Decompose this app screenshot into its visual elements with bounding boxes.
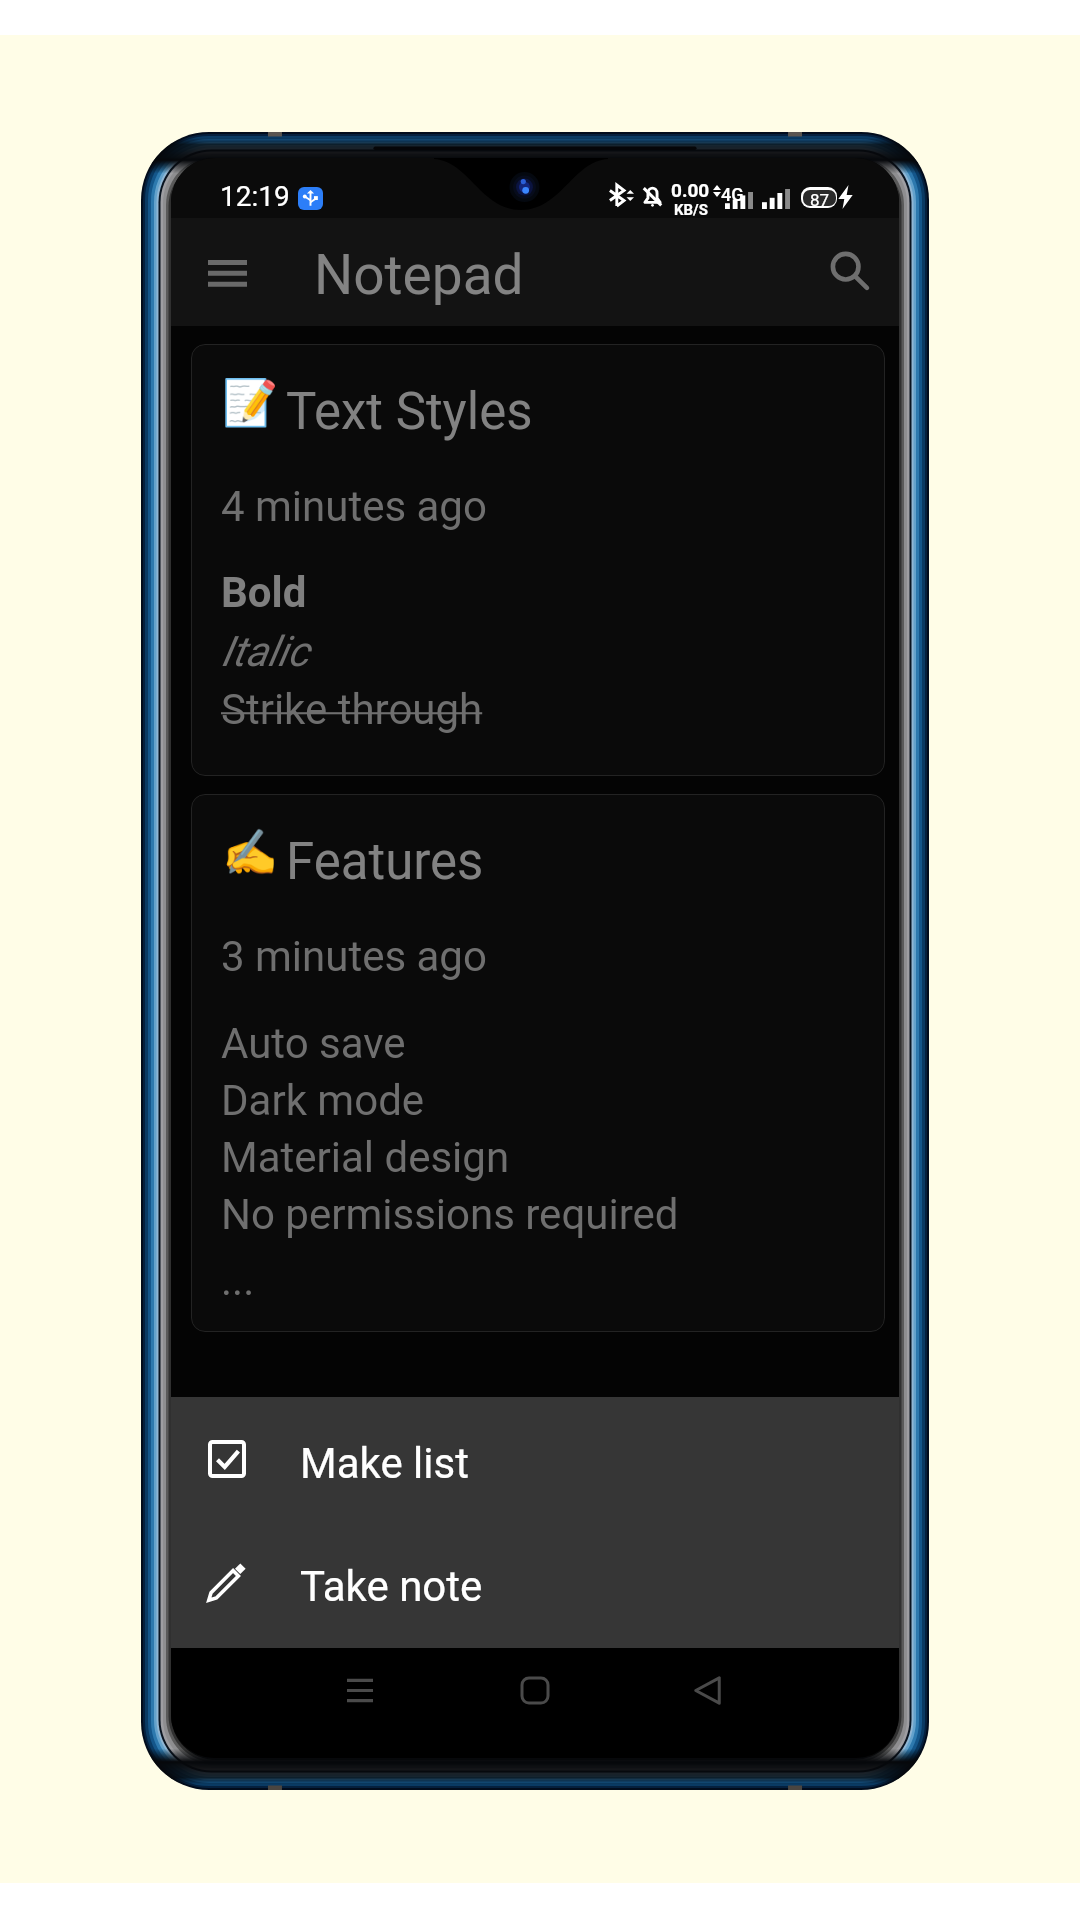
staticText: Auto save Dark mode Material design No p… (221, 1019, 679, 1239)
button[interactable]: Search (814, 235, 886, 307)
button[interactable]: 📝 (191, 344, 885, 776)
button[interactable]: Take note (171, 1520, 899, 1643)
staticText: Make list (300, 1439, 469, 1488)
staticText: 87 (810, 190, 830, 206)
staticText: 4 minutes ago (221, 482, 487, 531)
button[interactable]: Back (675, 1658, 739, 1722)
staticText: 0.00 (671, 179, 710, 201)
staticText: 12:19 (220, 180, 290, 213)
button[interactable]: Home (503, 1658, 567, 1722)
staticText: Take note (300, 1562, 483, 1611)
staticText: 4G (721, 184, 744, 205)
staticText: Italic (221, 627, 309, 676)
staticText: Features (286, 832, 484, 892)
staticText: Strike through (221, 685, 483, 734)
button[interactable]: Recent apps (328, 1658, 392, 1722)
button[interactable]: Open navigation drawer (190, 236, 264, 310)
staticText: ✍️ (222, 826, 279, 879)
staticText: Bold (221, 568, 307, 617)
staticText: Text Styles (286, 382, 533, 442)
staticText: ... (221, 1256, 255, 1305)
button[interactable]: ✍️ (191, 794, 885, 1332)
button[interactable]: Make list (171, 1397, 899, 1520)
staticText: KB/S (674, 201, 708, 218)
staticText: 3 minutes ago (221, 932, 487, 981)
staticText: 📝 (222, 376, 279, 429)
staticText: Notepad (314, 243, 524, 307)
